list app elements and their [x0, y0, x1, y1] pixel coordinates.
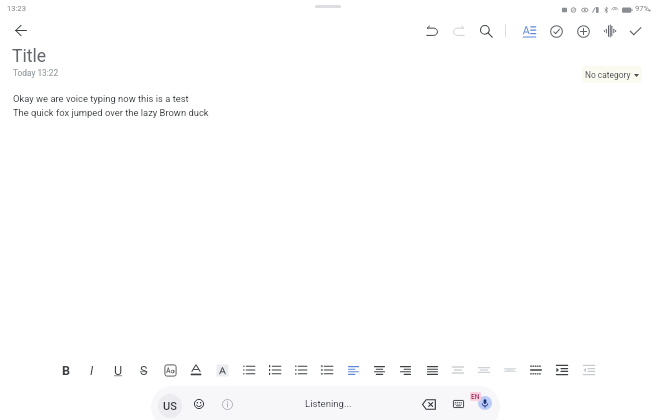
button[interactable]: US	[158, 394, 182, 418]
button[interactable]: Spacing	[499, 359, 521, 381]
button[interactable]: Voice input	[598, 19, 622, 43]
button[interactable]: Table	[525, 359, 547, 381]
button[interactable]: Strikethrough	[133, 359, 155, 381]
button[interactable]: Decrease indent	[578, 359, 600, 381]
button[interactable]: Line spacing	[447, 359, 469, 381]
button[interactable]: Microphone	[478, 396, 492, 410]
staticText: I	[90, 363, 94, 378]
button[interactable]: Checklist	[544, 19, 568, 43]
button[interactable]: Text colour	[185, 359, 207, 381]
button[interactable]: No category	[582, 66, 642, 83]
staticText: 13:23	[7, 4, 26, 13]
button[interactable]: Highlight	[211, 359, 233, 381]
button[interactable]: Align right	[394, 359, 416, 381]
button[interactable]: Keyboard	[446, 392, 470, 416]
staticText: US	[163, 400, 177, 413]
staticText: B	[62, 363, 71, 378]
staticText: No category	[585, 70, 631, 80]
button[interactable]: Done	[623, 19, 647, 43]
button[interactable]: Checklist	[290, 359, 312, 381]
staticText: EN	[471, 393, 480, 401]
button[interactable]: Redo	[446, 19, 470, 43]
button[interactable]: Search	[474, 19, 498, 43]
staticText: Title	[12, 46, 47, 67]
button[interactable]: Increase indent	[551, 359, 573, 381]
staticText: S	[140, 363, 148, 378]
button[interactable]: Align centre	[368, 359, 390, 381]
button[interactable]: Bulleted list	[238, 359, 260, 381]
button[interactable]: Back	[8, 18, 32, 42]
staticText: U	[114, 363, 123, 378]
button[interactable]: Todo list	[316, 359, 338, 381]
button[interactable]: Align left	[342, 359, 364, 381]
button[interactable]: Italic	[81, 359, 103, 381]
button[interactable]: Emoji	[187, 392, 211, 416]
staticText: Okay we are voice typing now this is a t…	[13, 93, 189, 104]
button[interactable]: Text format	[517, 19, 541, 43]
staticText: Today 13:22	[13, 68, 59, 78]
button[interactable]: Undo	[420, 19, 444, 43]
staticText: Listening...	[305, 398, 352, 409]
button[interactable]: Underline	[107, 359, 129, 381]
button[interactable]: Info	[215, 392, 239, 416]
button[interactable]: Add	[571, 19, 595, 43]
button[interactable]: Justify	[421, 359, 443, 381]
button[interactable]: Numbered list	[264, 359, 286, 381]
button[interactable]: Paragraph spacing	[473, 359, 495, 381]
button[interactable]: Font size	[159, 359, 181, 381]
staticText: 97%	[635, 4, 650, 13]
staticText: The quick fox jumped over the lazy Brown…	[13, 107, 209, 118]
button[interactable]: Backspace	[417, 392, 441, 416]
button[interactable]: Bold	[55, 359, 77, 381]
